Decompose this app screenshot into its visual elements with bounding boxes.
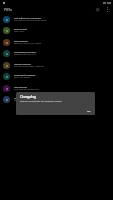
staticText: Basic Graphics bbox=[14, 40, 28, 43]
button[interactable]: Game variant bbox=[0, 25, 113, 37]
button[interactable]: Miscellaneous Graphics bbox=[0, 48, 113, 60]
staticText: Game variant bbox=[14, 28, 27, 31]
button[interactable]: More options bbox=[104, 6, 111, 13]
staticText: Resolution, Graphics, FPS, Shadow bbox=[14, 42, 42, 44]
staticText: Version, Developer, Contact bbox=[14, 99, 36, 101]
staticText: Miscellaneous Graphics bbox=[14, 51, 37, 54]
button[interactable]: Search bbox=[94, 6, 101, 13]
button[interactable]: Tips and Trick bbox=[0, 83, 113, 95]
button[interactable]: OK bbox=[85, 108, 93, 113]
staticText: Bloom, Hdr, Sharpen bbox=[14, 76, 31, 78]
staticText: Rendering, Lens Flare, FXAA bbox=[14, 53, 37, 55]
button[interactable]: About bbox=[0, 94, 113, 106]
staticText: PGB 20+ is new PGT Pro Graphics Toolkit bbox=[20, 100, 62, 103]
staticText: About bbox=[14, 97, 20, 100]
staticText: Tips and Trick bbox=[14, 86, 27, 89]
staticText: PGTx bbox=[4, 8, 12, 12]
staticText: Best settings for your device bbox=[14, 17, 41, 20]
staticText: OK bbox=[87, 109, 91, 112]
staticText: Anti-Alias, Texture quality, Anisotropic bbox=[14, 65, 44, 67]
staticText: Advance Graphics bbox=[14, 63, 31, 66]
button[interactable]: Experimental Graphics bbox=[0, 71, 113, 83]
button[interactable]: Best settings for your device bbox=[0, 14, 113, 26]
staticText: Select : BGMI bbox=[14, 30, 25, 32]
staticText: Changelog bbox=[20, 95, 36, 99]
staticText: Experimental Graphics bbox=[14, 74, 36, 77]
button[interactable]: Basic Graphics bbox=[0, 37, 113, 49]
staticText: Guide to get best performance bbox=[14, 88, 39, 90]
staticText: Apply graphics settings of similar devic… bbox=[14, 19, 47, 21]
button[interactable]: Advance Graphics bbox=[0, 60, 113, 72]
